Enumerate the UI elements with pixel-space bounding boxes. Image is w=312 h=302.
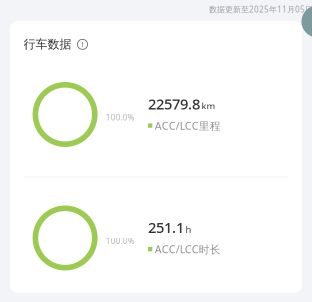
staticText: 22579.8 (148, 94, 200, 113)
staticText: 数据更新至2025年11月05日 (209, 4, 312, 15)
staticText: ACC/LCC时长 (155, 242, 221, 256)
staticText: 100.0% (106, 235, 135, 246)
staticText: 行车数据 (23, 37, 71, 52)
staticText: km (201, 100, 215, 112)
staticText: i (81, 39, 83, 49)
staticText: 100.0% (106, 112, 135, 123)
staticText: h (185, 223, 191, 235)
staticText: 251.1 (148, 217, 184, 237)
staticText: ACC/LCC里程 (155, 118, 221, 133)
